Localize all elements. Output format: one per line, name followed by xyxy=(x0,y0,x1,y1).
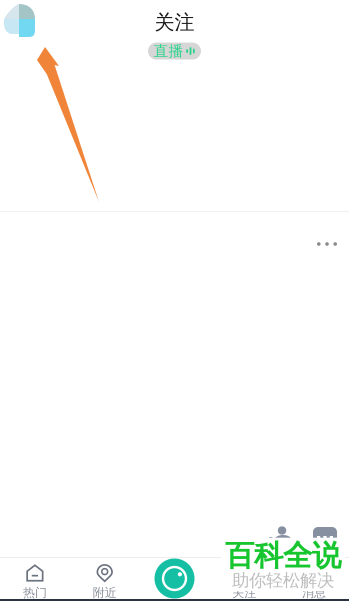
button[interactable]: 热门 xyxy=(0,557,70,600)
button[interactable]: 消息 xyxy=(279,557,349,600)
staticText: 关注 xyxy=(232,585,256,600)
staticText: 助你轻松解决 xyxy=(232,570,334,591)
button[interactable]: 附近 xyxy=(70,557,140,600)
staticText: 热门 xyxy=(23,585,47,600)
staticText: 直播 xyxy=(153,42,183,60)
staticText: 关注 xyxy=(154,10,194,35)
button[interactable]: More xyxy=(309,233,345,255)
button[interactable]: Profile xyxy=(2,2,38,38)
staticText: 消息 xyxy=(302,585,326,600)
button[interactable]: Capture xyxy=(153,557,195,599)
button[interactable]: 关注 xyxy=(209,557,279,600)
staticText: 百科全说 xyxy=(225,538,341,574)
staticText: 附近 xyxy=(93,585,117,600)
button[interactable]: 直播 xyxy=(148,43,201,60)
